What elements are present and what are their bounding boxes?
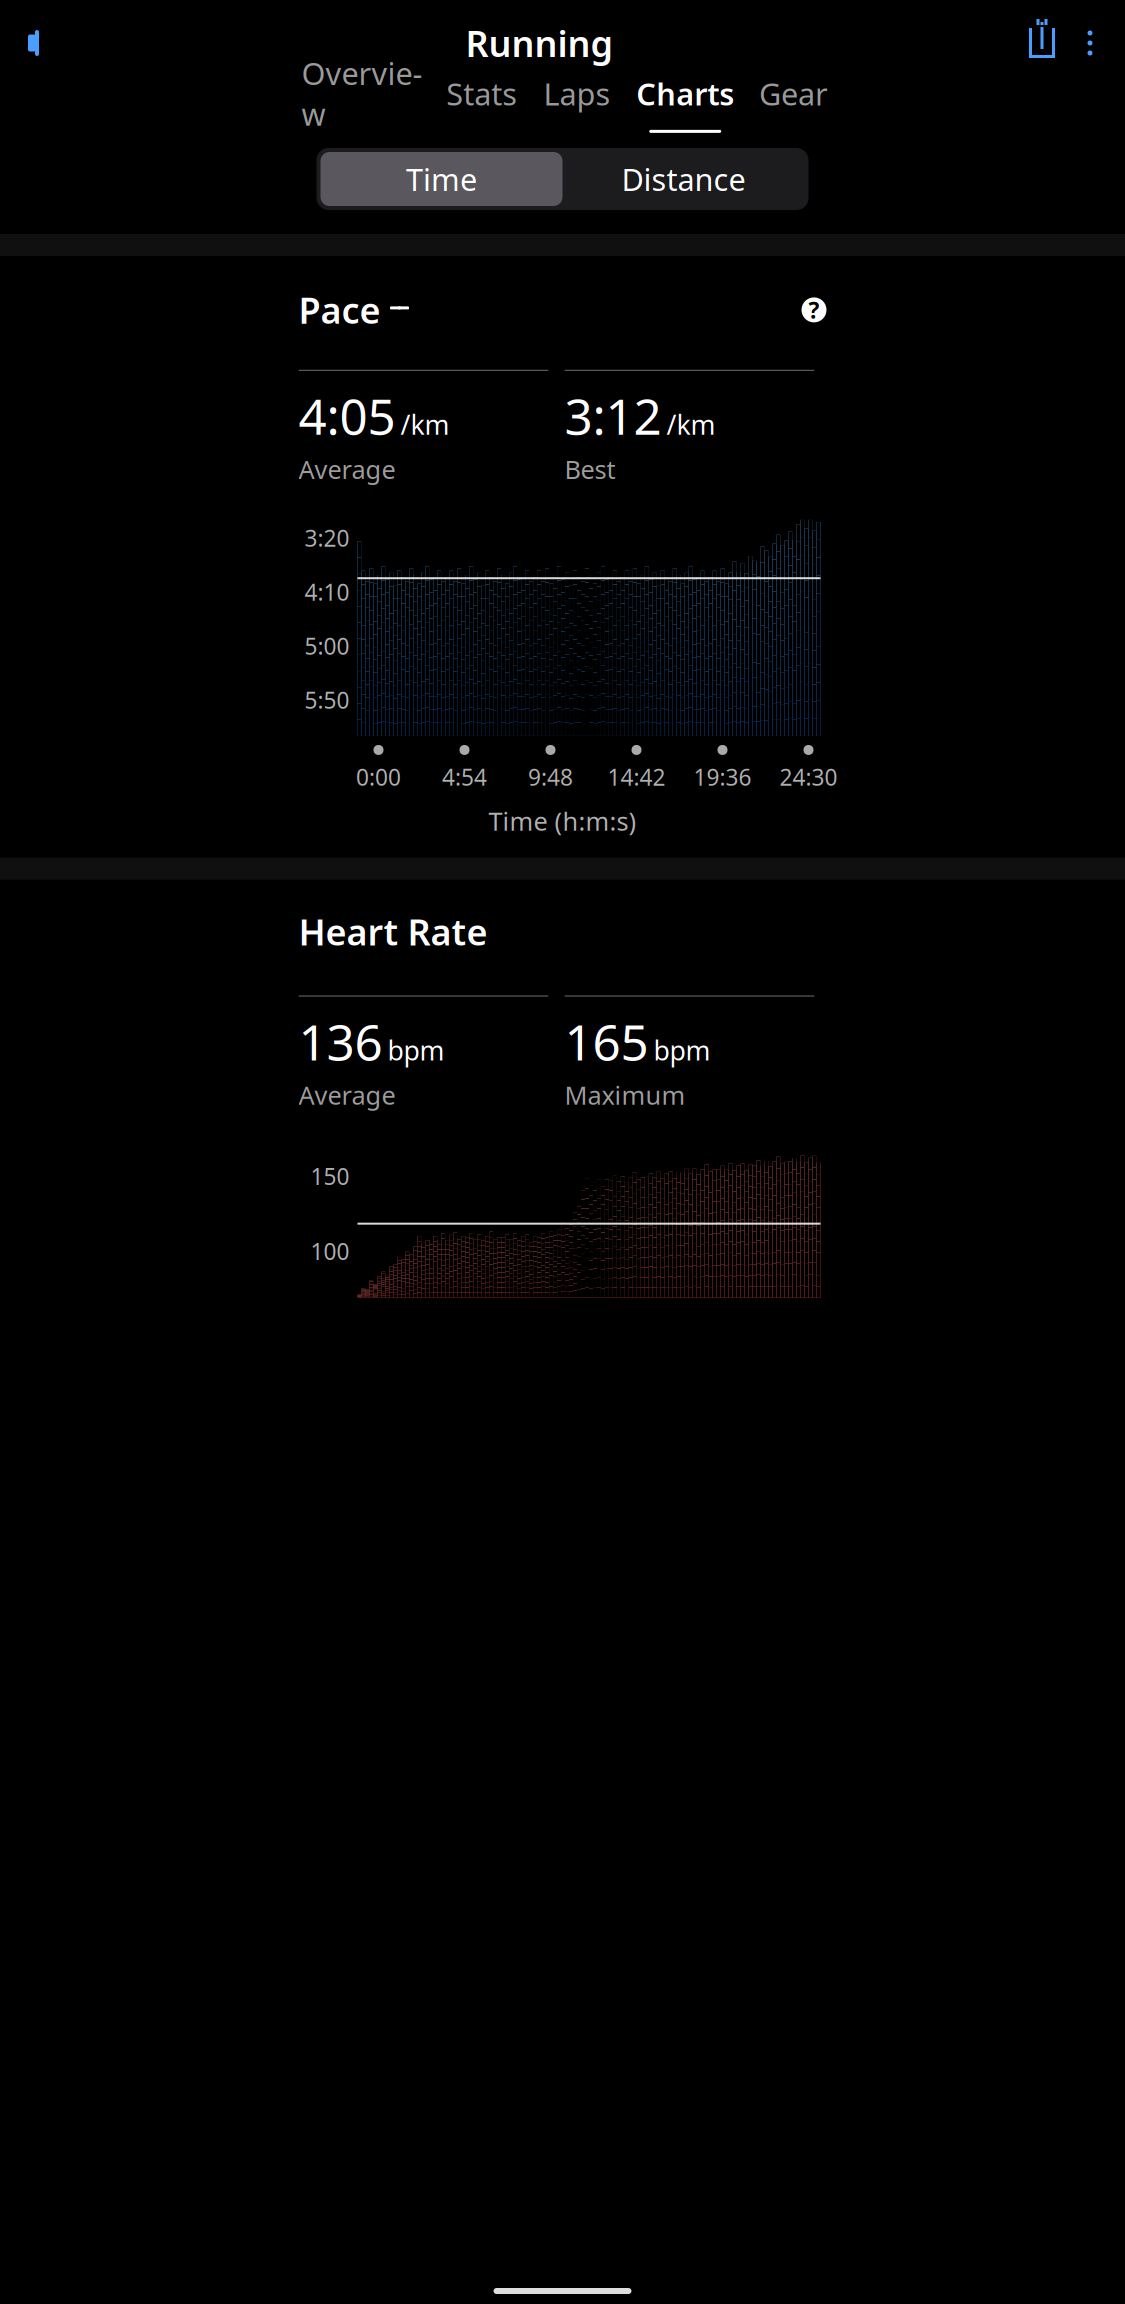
staticText: Time (406, 159, 477, 199)
button[interactable]: Gear (751, 72, 835, 134)
staticText: ? (808, 295, 819, 325)
staticText: Average (298, 1078, 395, 1112)
staticText: /km (400, 407, 449, 442)
staticText: 3:12 (564, 383, 661, 448)
button[interactable]: Share (1019, 18, 1071, 68)
staticText: bpm (653, 1032, 710, 1068)
button[interactable]: Distance (562, 152, 804, 206)
button[interactable]: Overview (295, 72, 428, 134)
staticText: 24:30 (779, 762, 837, 792)
staticText: Distance (621, 159, 745, 199)
staticText: Running (465, 19, 613, 67)
staticText: 9:48 (528, 762, 573, 792)
button[interactable]: Pace (298, 282, 410, 338)
staticText: Pace (298, 286, 380, 334)
button[interactable]: Time (320, 152, 562, 206)
button[interactable]: Help about pace (801, 297, 826, 322)
button[interactable]: Charts (630, 72, 740, 134)
staticText: 100 (310, 1236, 349, 1266)
button[interactable]: More options (1071, 18, 1125, 68)
staticText: Charts (636, 73, 734, 114)
staticText: 3:20 (304, 523, 349, 553)
staticText: 14:42 (607, 762, 665, 792)
staticText: 19:36 (693, 762, 751, 792)
staticText: 0:00 (356, 762, 401, 792)
staticText: /km (666, 407, 715, 442)
staticText: bpm (387, 1032, 444, 1068)
staticText: 136 (298, 1008, 382, 1074)
button[interactable]: Back (0, 20, 60, 66)
staticText: Laps (543, 73, 610, 114)
staticText: 4:10 (304, 577, 349, 607)
staticText: 165 (564, 1008, 648, 1074)
staticText: Average (298, 452, 395, 486)
staticText: Time (h:m:s) (488, 804, 636, 838)
button[interactable]: Stats (440, 72, 524, 134)
staticText: 5:00 (304, 631, 349, 661)
button[interactable]: Laps (535, 72, 619, 134)
staticText: Overview (301, 53, 422, 134)
staticText: Maximum (564, 1078, 685, 1112)
staticText: 5:50 (304, 685, 349, 715)
staticText: Gear (759, 73, 828, 114)
staticText: 150 (310, 1161, 349, 1191)
staticText: Best (564, 452, 615, 486)
staticText: Stats (446, 73, 517, 114)
staticText: Heart Rate (298, 908, 487, 955)
staticText: 4:54 (442, 762, 487, 792)
staticText: 4:05 (298, 383, 395, 448)
